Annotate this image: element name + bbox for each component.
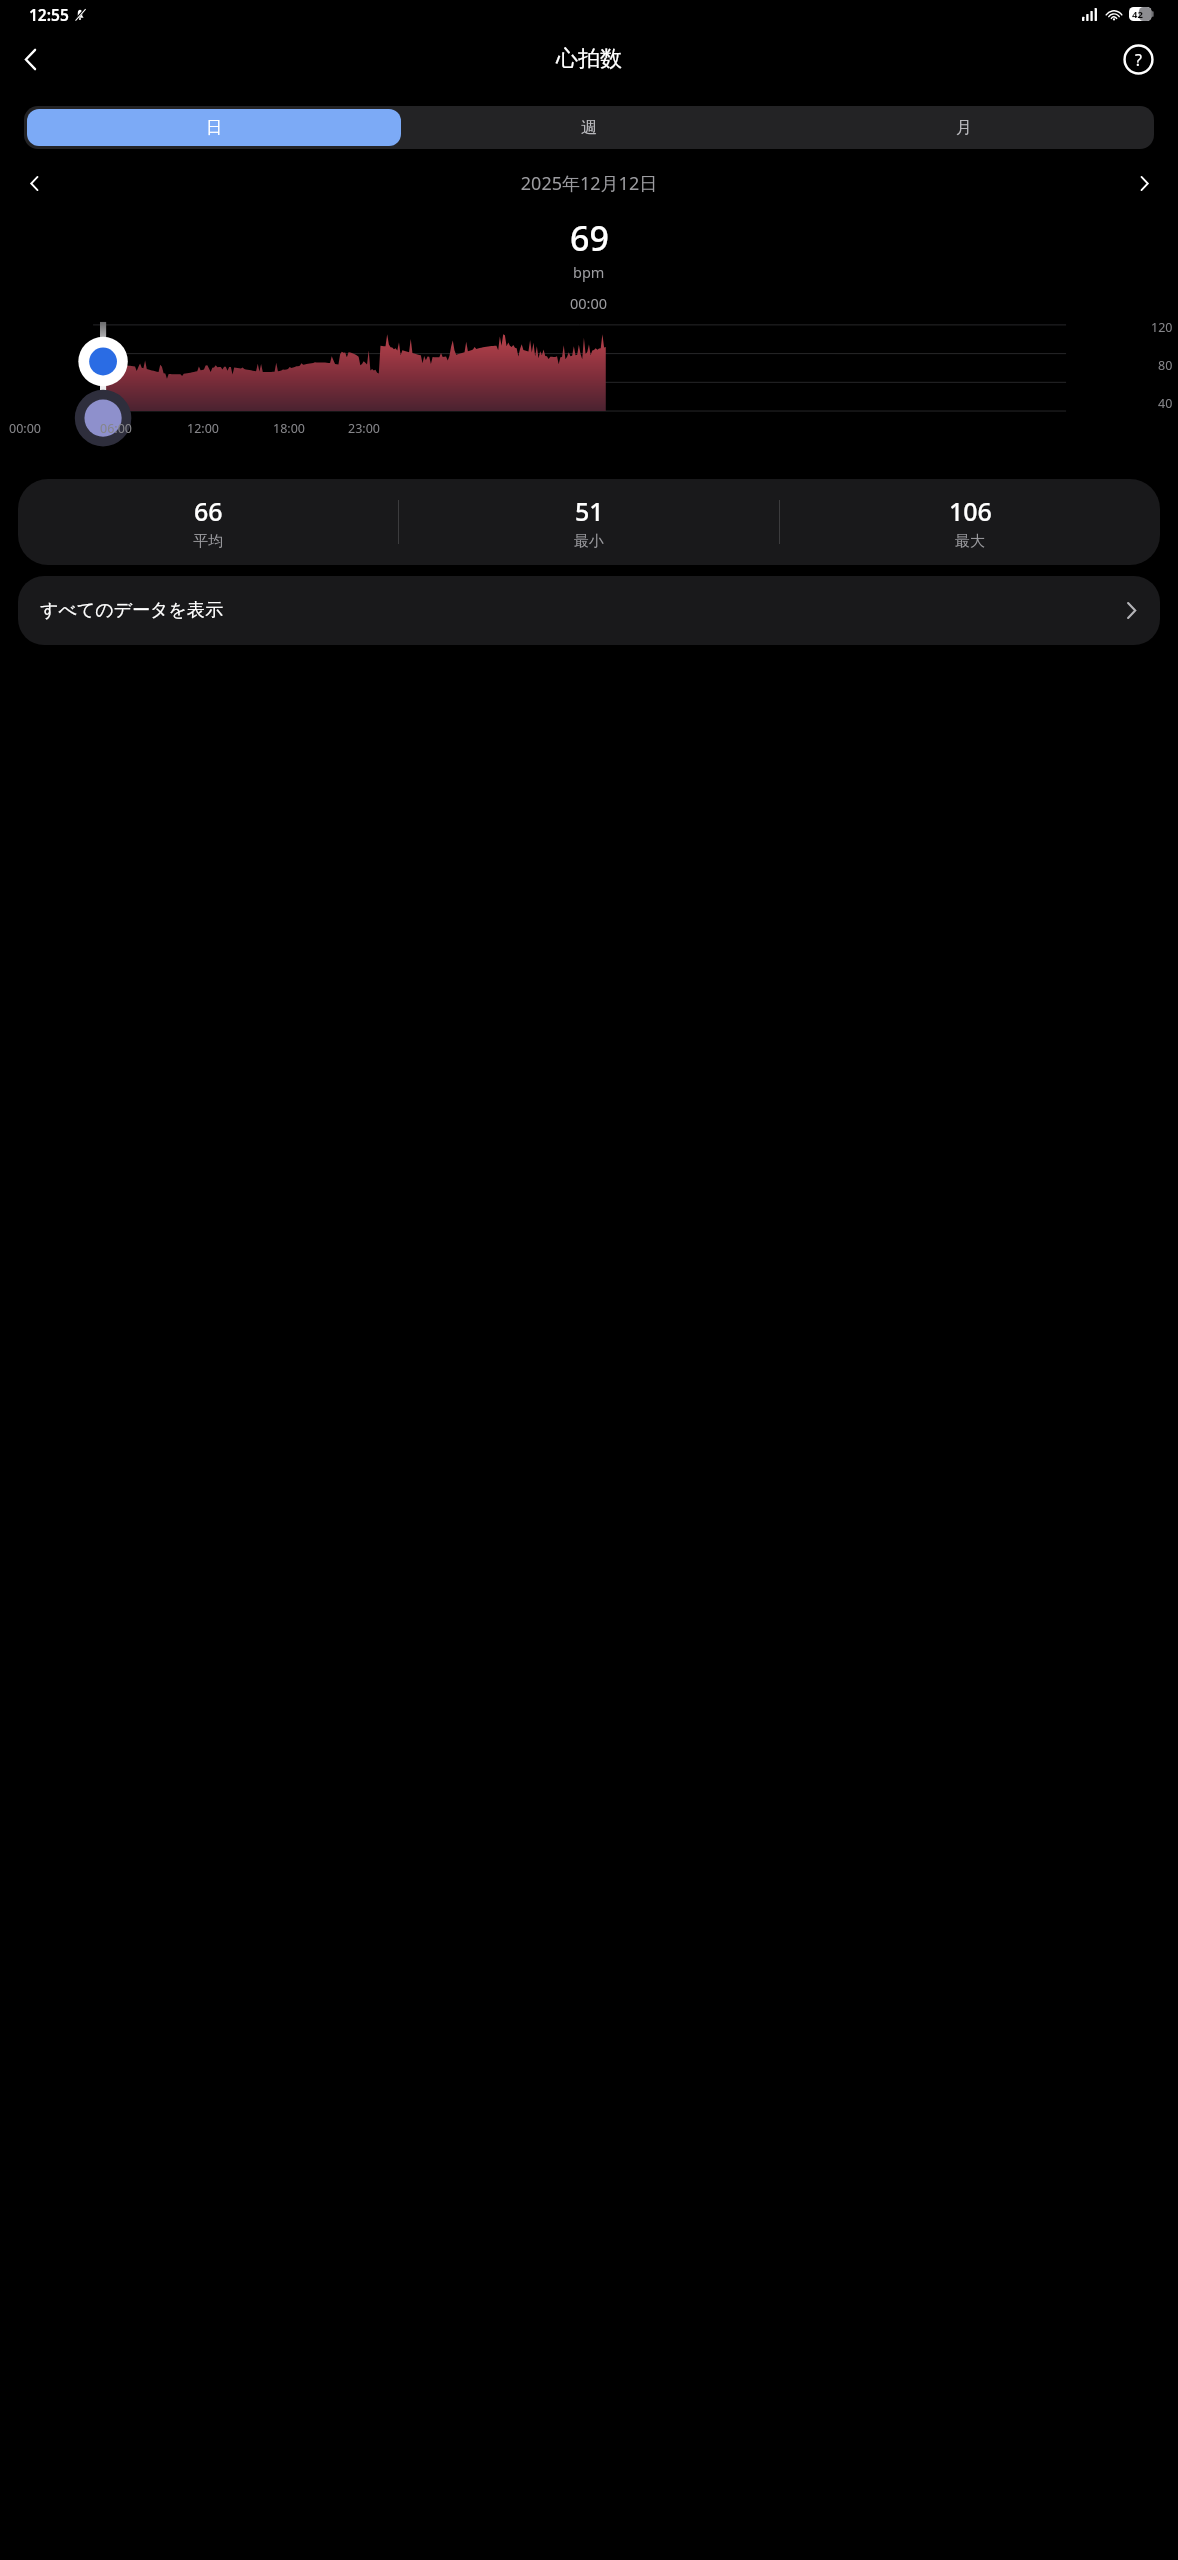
button[interactable]: Previous day	[12, 161, 56, 205]
staticText: 12:00	[187, 420, 219, 437]
button[interactable]: Help	[1111, 32, 1165, 86]
staticText: 23:00	[348, 420, 380, 437]
button[interactable]: Back	[3, 32, 57, 86]
staticText: 心拍数	[556, 45, 622, 73]
staticText: 120	[1151, 319, 1173, 336]
staticText: 日	[206, 118, 222, 138]
staticText: 80	[1158, 357, 1173, 374]
button[interactable]: 66	[18, 479, 1160, 565]
staticText: 40	[1158, 395, 1173, 412]
staticText: 最小	[574, 532, 604, 551]
staticText: 42	[1132, 8, 1143, 21]
staticText: 51	[575, 494, 604, 528]
staticText: 月	[956, 118, 972, 138]
staticText: 06:00	[100, 420, 132, 437]
staticText: 最大	[955, 532, 985, 551]
staticText: 18:00	[273, 420, 305, 437]
button[interactable]: 月	[776, 109, 1151, 146]
staticText: 2025年12月12日	[56, 171, 1122, 196]
staticText: 106	[949, 494, 992, 528]
staticText: 00:00	[9, 420, 41, 437]
staticText: 69	[570, 215, 609, 261]
button[interactable]: Next day	[1122, 161, 1166, 205]
staticText: 00:00	[570, 293, 608, 313]
staticText: 週	[581, 118, 597, 138]
button[interactable]: 日	[27, 109, 401, 146]
staticText: 66	[194, 494, 223, 528]
staticText: すべてのデータを表示	[40, 599, 1123, 622]
staticText: 平均	[193, 532, 223, 551]
staticText: ?	[1135, 49, 1142, 71]
staticText: 12:55	[29, 4, 69, 25]
staticText: bpm	[573, 262, 605, 282]
button[interactable]: すべてのデータを表示	[18, 576, 1160, 645]
button[interactable]: 週	[401, 109, 776, 146]
